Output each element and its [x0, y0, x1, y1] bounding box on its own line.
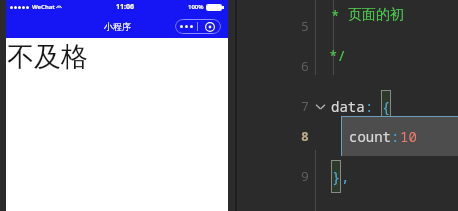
- staticText: 10: [400, 127, 417, 146]
- staticText: *: [331, 6, 348, 25]
- staticText: 6: [301, 57, 309, 75]
- staticText: :: [365, 97, 374, 116]
- staticText: WeChat: [32, 3, 55, 11]
- staticText: }: [332, 167, 341, 186]
- staticText: */: [329, 46, 346, 65]
- staticText: count: [349, 127, 391, 146]
- staticText: 8: [301, 127, 309, 145]
- staticText: 5: [301, 17, 309, 35]
- staticText: :: [391, 127, 400, 146]
- staticText: 9: [301, 167, 309, 185]
- staticText: ,: [341, 167, 350, 186]
- staticText: data: [331, 97, 365, 116]
- button[interactable]: Collapse block: [309, 86, 331, 126]
- staticText: 页面的初: [348, 6, 404, 24]
- button[interactable]: More: [175, 19, 197, 34]
- staticText: 不及格: [7, 40, 88, 74]
- button[interactable]: Close: [198, 19, 221, 34]
- staticText: 100%: [188, 3, 204, 11]
- staticText: 7: [301, 97, 309, 115]
- staticText: {: [382, 97, 391, 116]
- button[interactable]: 8: [237, 116, 458, 156]
- staticText: 11:06: [116, 2, 134, 12]
- staticText: 小程序: [104, 21, 131, 32]
